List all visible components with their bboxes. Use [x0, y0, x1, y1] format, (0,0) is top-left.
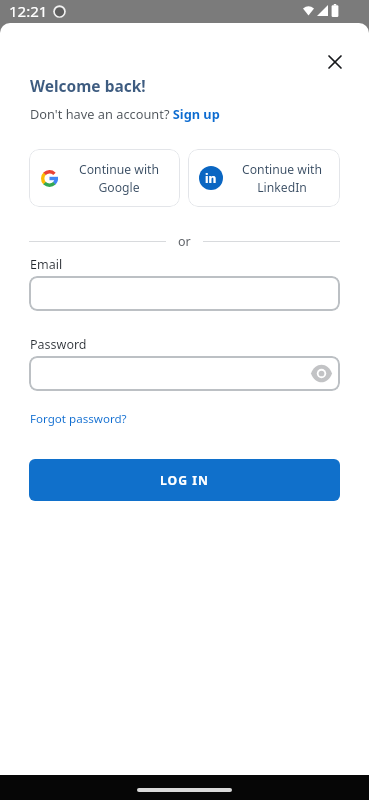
- button[interactable]: Don't have an account? Sign up: [30, 105, 220, 122]
- staticText: Welcome back!: [30, 75, 146, 96]
- button[interactable]: Forgot password?: [30, 411, 127, 427]
- button[interactable]: [29, 356, 340, 391]
- staticText: in: [205, 170, 217, 186]
- button[interactable]: [318, 45, 352, 79]
- staticText: Continue with LinkedIn: [242, 161, 322, 196]
- button[interactable]: LOG IN: [29, 459, 340, 501]
- staticText: or: [178, 233, 191, 250]
- staticText: 12:21: [9, 1, 48, 21]
- staticText: Continue with Google: [79, 161, 159, 196]
- button[interactable]: in: [188, 149, 340, 207]
- button[interactable]: [29, 276, 340, 311]
- staticText: Password: [30, 336, 87, 353]
- staticText: Email: [30, 256, 63, 273]
- button[interactable]: Continue with Google: [29, 149, 180, 207]
- staticText: LOG IN: [160, 472, 209, 489]
